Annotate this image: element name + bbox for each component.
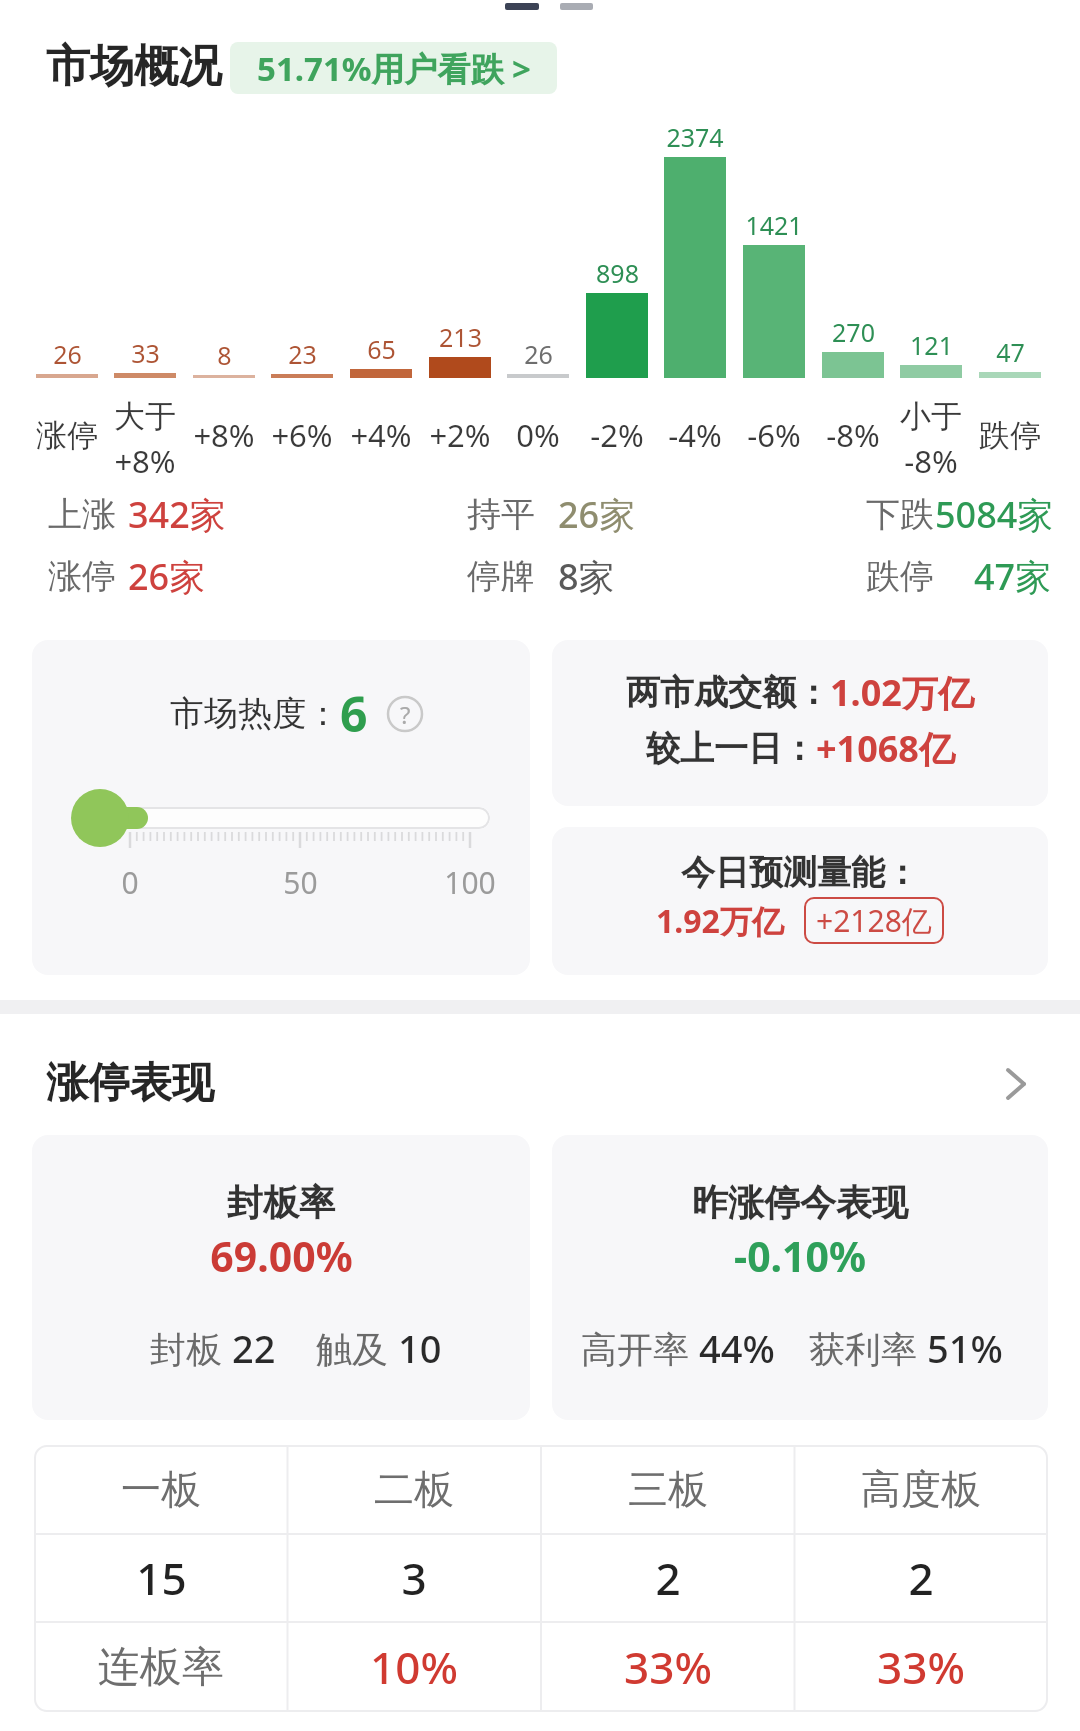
staticText: 213 (439, 320, 482, 354)
staticText: 26家 (558, 490, 636, 539)
staticText: +8% (193, 414, 255, 456)
staticText: -0.10% (734, 1228, 866, 1284)
button[interactable] (552, 1135, 1048, 1420)
staticText: -8% (826, 414, 880, 456)
staticText: 10% (370, 1637, 458, 1697)
staticText: 停牌 (467, 555, 535, 598)
staticText: 2 (908, 1548, 934, 1608)
staticText: 1.02万亿 (830, 668, 974, 717)
staticText: 51% (927, 1322, 1003, 1374)
staticText: 一板 (121, 1464, 201, 1514)
staticText: 今日预测量能： (681, 851, 919, 894)
staticText: 0% (516, 414, 560, 456)
staticText: 44% (699, 1322, 775, 1374)
staticText: 二板 (374, 1464, 454, 1514)
button[interactable] (552, 640, 1048, 806)
staticText: 下跌 (866, 493, 934, 536)
staticText: 47家 (974, 552, 1052, 601)
staticText: 两市成交额： (626, 671, 830, 714)
staticText: 封板 (150, 1324, 232, 1373)
staticText: 50 (283, 862, 318, 903)
staticText: 33% (624, 1637, 712, 1697)
staticText: +4% (350, 414, 412, 456)
button[interactable]: 51.71%用户看跌 > (230, 42, 557, 94)
staticText: 8 (217, 338, 232, 372)
staticText: 22 (232, 1322, 276, 1374)
staticText: 涨停 (48, 555, 116, 598)
staticText: 高开率 (581, 1324, 699, 1373)
staticText: 大于 +8% (114, 397, 176, 482)
staticText: 1421 (745, 208, 803, 242)
staticText: +2% (429, 414, 491, 456)
staticText: 898 (596, 256, 639, 290)
staticText: 2 (655, 1548, 681, 1608)
staticText: 8家 (558, 552, 615, 601)
staticText: 2374 (666, 120, 724, 154)
staticText: 涨停 (36, 416, 98, 455)
button[interactable] (32, 1135, 530, 1420)
staticText: +6% (271, 414, 333, 456)
staticText: 121 (910, 328, 953, 362)
staticText: 连板率 (98, 1641, 224, 1694)
button[interactable] (1004, 1068, 1030, 1100)
staticText: -6% (747, 414, 801, 456)
staticText: 33% (877, 1637, 965, 1697)
staticText: -2% (590, 414, 644, 456)
staticText: 3 (401, 1548, 427, 1608)
staticText: 270 (832, 315, 875, 349)
staticText: 47 (996, 335, 1025, 369)
staticText: 6 (340, 681, 368, 746)
staticText: 市场概况 (46, 39, 222, 94)
staticText: 上涨 (48, 493, 116, 536)
staticText: 获利率 (809, 1324, 927, 1373)
staticText: 较上一日： (646, 727, 816, 770)
staticText: 持平 (467, 493, 535, 536)
staticText: ? (400, 698, 411, 731)
staticText: 26 (524, 337, 553, 371)
staticText: 封板率 (227, 1180, 335, 1225)
staticText: +1068亿 (816, 724, 955, 773)
staticText: 昨涨停今表现 (692, 1180, 908, 1225)
staticText: 市场热度： (170, 692, 340, 735)
staticText: 高度板 (861, 1464, 981, 1514)
staticText: +2128亿 (816, 900, 932, 941)
staticText: 10 (398, 1322, 442, 1374)
staticText: 三板 (628, 1464, 708, 1514)
staticText: 触及 (316, 1324, 398, 1373)
staticText: 51.71%用户看跌 > (257, 46, 531, 91)
staticText: 跌停 (866, 555, 934, 598)
staticText: -4% (668, 414, 722, 456)
staticText: 342家 (128, 490, 226, 539)
staticText: 0 (121, 862, 139, 903)
staticText: 涨停表现 (46, 1057, 214, 1110)
staticText: 1.92万亿 (656, 899, 784, 943)
button[interactable] (552, 827, 1048, 975)
staticText: 15 (136, 1548, 187, 1608)
staticText: 69.00% (210, 1228, 353, 1284)
staticText: 跌停 (979, 416, 1041, 455)
staticText: 26家 (128, 552, 206, 601)
staticText: 23 (288, 337, 317, 371)
button[interactable] (32, 640, 530, 975)
staticText: 26 (53, 337, 82, 371)
staticText: 33 (131, 336, 160, 370)
staticText: 100 (444, 862, 496, 903)
staticText: 小于 -8% (900, 397, 962, 482)
staticText: 5084家 (935, 490, 1054, 539)
staticText: 65 (367, 332, 396, 366)
